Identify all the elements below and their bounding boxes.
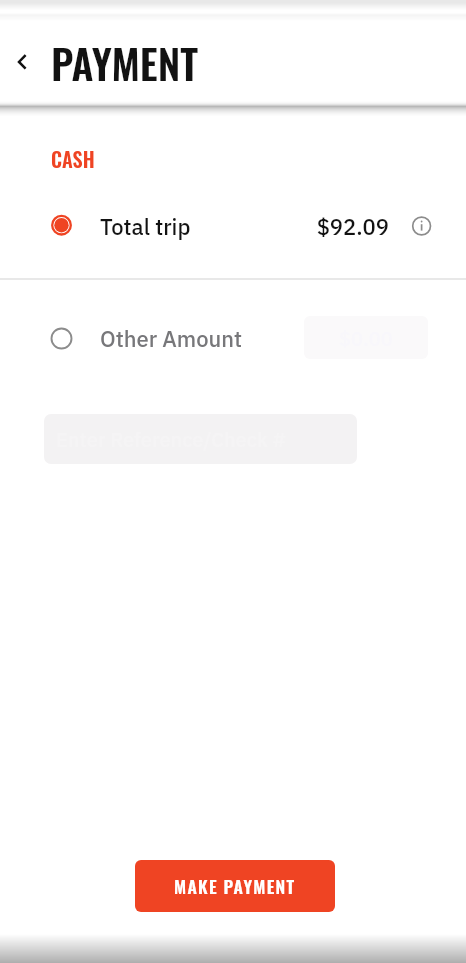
staticText: Other Amount (100, 324, 243, 353)
button[interactable]: MAKE PAYMENT (135, 860, 335, 912)
button[interactable]: Fare breakdown info (404, 208, 440, 244)
staticText: PAYMENT (51, 32, 199, 93)
staticText: Total trip (100, 212, 191, 241)
staticText: CASH (51, 144, 95, 174)
button[interactable]: Back (2, 38, 44, 86)
button[interactable]: Total trip (0, 196, 466, 256)
staticText: MAKE PAYMENT (174, 873, 296, 899)
staticText: $92.09 (250, 212, 389, 241)
button[interactable]: Other Amount (0, 308, 466, 368)
